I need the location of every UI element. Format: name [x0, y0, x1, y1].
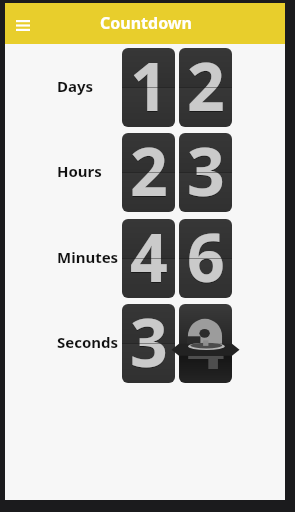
staticText: 2 — [130, 133, 168, 204]
staticText: 2 — [187, 48, 225, 120]
staticText: 6 — [187, 219, 225, 291]
staticText: Minutes — [57, 247, 122, 267]
staticText: Hours — [57, 161, 122, 181]
staticText: 4 — [130, 219, 168, 290]
staticText: 3 — [187, 133, 225, 204]
staticText: 2 — [130, 133, 168, 205]
staticText: 4 — [187, 304, 225, 377]
staticText: 4 — [130, 219, 168, 291]
staticText: 6 — [187, 219, 225, 290]
staticText: Countdown — [100, 12, 192, 34]
staticText: 3 — [130, 304, 168, 376]
staticText: 1 — [130, 48, 168, 120]
button[interactable]: Menu — [8, 10, 38, 40]
staticText: 3 — [130, 304, 168, 375]
staticText: 2 — [187, 48, 225, 119]
staticText: 1 — [130, 48, 168, 119]
staticText: Days — [57, 76, 122, 96]
staticText: Seconds — [57, 332, 122, 352]
staticText: 3 — [187, 133, 225, 205]
